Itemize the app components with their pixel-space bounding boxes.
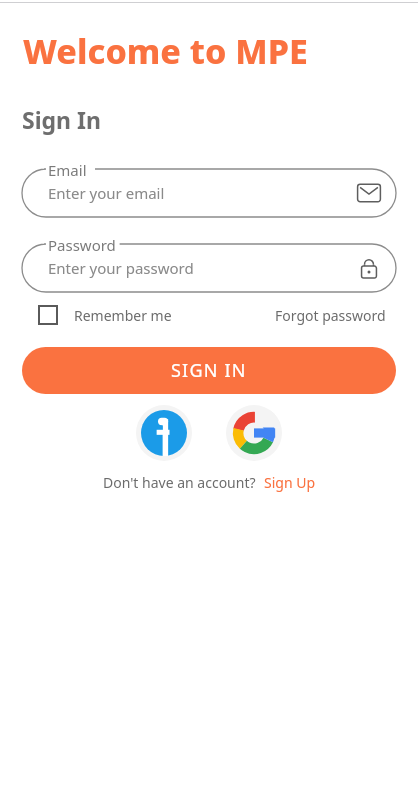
staticText: Sign In: [22, 104, 101, 135]
staticText: Don't have an account?: [103, 473, 256, 492]
staticText: Email: [48, 160, 87, 180]
button[interactable]: Sign in with Facebook: [136, 405, 192, 461]
staticText: Remember me: [74, 306, 172, 325]
staticText: SIGN IN: [171, 358, 247, 383]
other: Email: [356, 180, 382, 206]
staticText: Welcome to MPE: [23, 28, 308, 74]
button[interactable]: Sign Up: [264, 473, 316, 492]
staticText: Password: [48, 235, 116, 255]
button[interactable]: Sign in with Google: [226, 405, 282, 461]
staticText: Enter your password: [48, 258, 194, 278]
button[interactable]: Email: [22, 159, 396, 217]
button[interactable]: Remember me: [38, 305, 172, 325]
button[interactable]: SIGN IN: [22, 347, 396, 394]
other: Password: [356, 255, 382, 281]
button[interactable]: Forgot password: [275, 306, 386, 325]
staticText: Enter your email: [48, 183, 165, 203]
button[interactable]: Password: [22, 234, 396, 292]
